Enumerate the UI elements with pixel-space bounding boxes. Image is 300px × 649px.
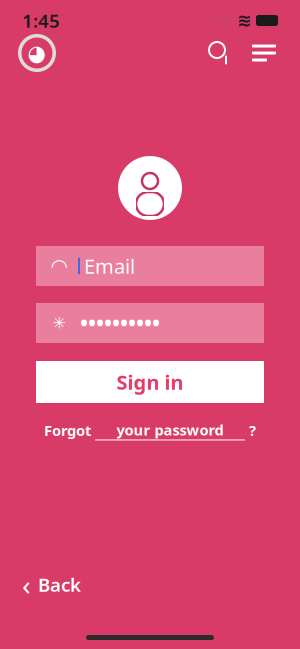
button[interactable]: Forgot — [36, 415, 264, 445]
staticText: ? — [249, 420, 256, 440]
staticText: ✳ — [52, 314, 65, 332]
staticText: Forgot — [44, 420, 91, 440]
staticText: •••••••••• — [80, 309, 160, 337]
button[interactable]: Menu — [252, 33, 286, 73]
staticText: ◕ — [27, 41, 46, 65]
button[interactable]: Search — [200, 33, 240, 73]
button[interactable]: ◠ — [36, 246, 264, 286]
button[interactable]: ✳ — [36, 303, 264, 343]
button[interactable]: Home — [14, 30, 60, 76]
button[interactable]: ‹ — [12, 558, 91, 611]
button[interactable]: Sign in — [36, 361, 264, 403]
staticText: •••• — [213, 12, 233, 28]
staticText: Sign in — [116, 369, 183, 395]
staticText: Email — [84, 253, 135, 279]
staticText: ◠ — [50, 255, 67, 277]
staticText: ‹ — [22, 566, 31, 603]
staticText: Back — [38, 572, 81, 597]
staticText: ≋ — [237, 11, 252, 30]
staticText: 1:45 — [22, 8, 60, 33]
staticText: your password — [116, 420, 223, 439]
